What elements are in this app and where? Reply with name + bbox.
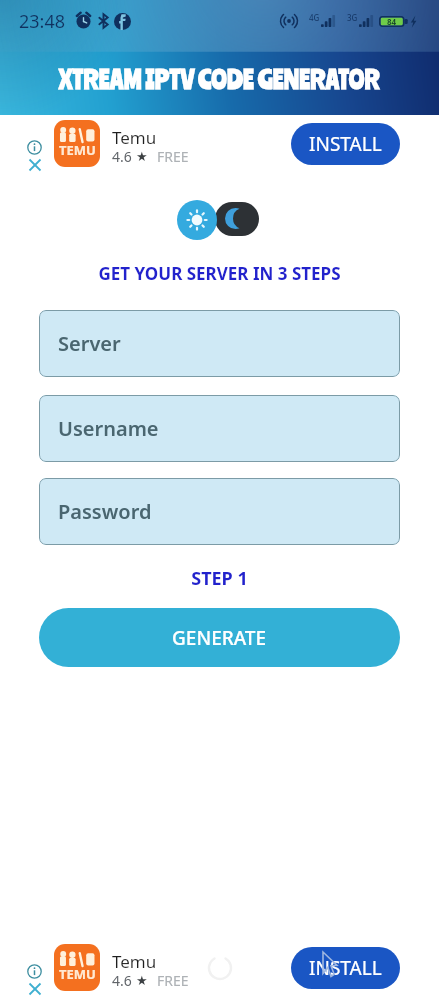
staticText: FREE (157, 971, 189, 990)
staticText: GENERATE (172, 625, 267, 651)
staticText: 4.6 (112, 147, 132, 166)
staticText: STEP 1 (0, 566, 439, 591)
button[interactable]: Password (39, 478, 400, 545)
button[interactable]: GENERATE (39, 608, 400, 667)
staticText: 4.6 (112, 971, 132, 990)
staticText: 23:48 (19, 9, 66, 34)
staticText: ★ (136, 149, 148, 164)
button[interactable]: Ad information (27, 964, 42, 979)
staticText: TEMU (59, 141, 96, 159)
staticText: Password (58, 498, 152, 525)
button[interactable]: Server (39, 310, 400, 377)
staticText: TEMU (59, 965, 96, 983)
button[interactable]: Toggle day and night mode (177, 200, 259, 240)
button[interactable]: Close ad (28, 982, 42, 996)
button[interactable]: Username (39, 395, 400, 462)
staticText: Server (58, 330, 121, 357)
staticText: XTREAM IPTV CODE GENERATOR (59, 63, 381, 94)
staticText: 4G (309, 12, 320, 23)
staticText: GET YOUR SERVER IN 3 STEPS (0, 262, 439, 285)
staticText: ★ (136, 973, 148, 988)
staticText: INSTALL (309, 955, 382, 981)
button[interactable]: INSTALL (291, 123, 400, 165)
staticText: Temu (112, 950, 157, 973)
button[interactable]: Close ad (28, 158, 42, 172)
staticText: FREE (157, 147, 189, 166)
button[interactable]: Ad information (27, 140, 42, 155)
staticText: Username (58, 415, 159, 442)
staticText: Temu (112, 126, 157, 149)
staticText: 84 (387, 16, 397, 27)
button[interactable]: INSTALL (291, 947, 400, 989)
staticText: INSTALL (309, 131, 382, 157)
staticText: 3G (347, 12, 358, 23)
